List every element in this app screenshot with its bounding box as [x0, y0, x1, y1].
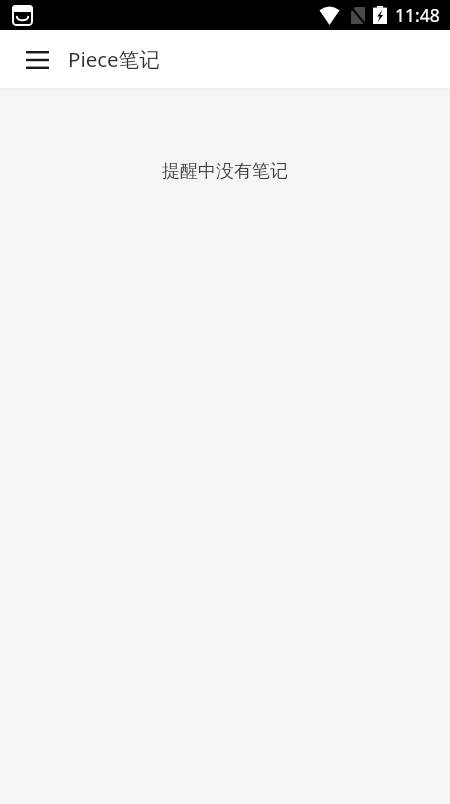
staticText: 11:48: [395, 3, 440, 27]
staticText: 提醒中没有笔记: [162, 160, 288, 183]
staticText: Piece笔记: [68, 45, 160, 73]
button[interactable]: Open navigation menu: [14, 36, 60, 82]
